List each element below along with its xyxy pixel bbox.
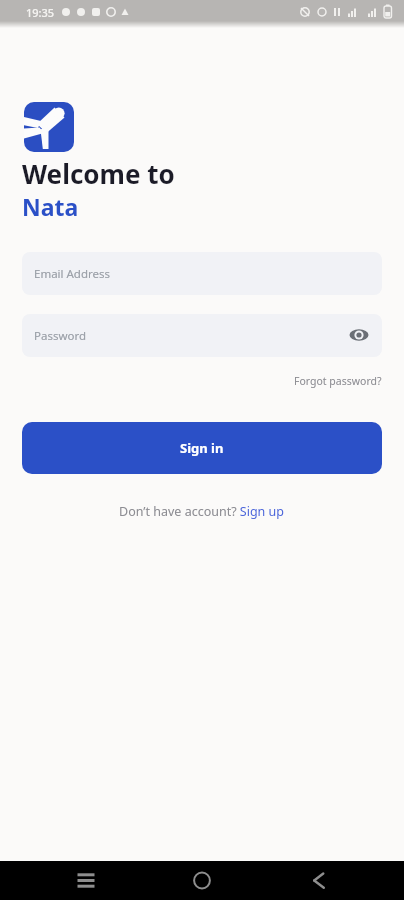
staticText: Sign in bbox=[180, 439, 224, 457]
button[interactable]: Sign in bbox=[22, 422, 382, 474]
staticText: Nata bbox=[22, 191, 79, 222]
button[interactable]: Password bbox=[22, 314, 382, 357]
staticText: Welcome to bbox=[22, 156, 175, 191]
staticText: 19:35 bbox=[26, 5, 55, 20]
staticText: Password bbox=[34, 328, 87, 344]
button[interactable]: Don’t have account? Sign up bbox=[119, 503, 285, 520]
button[interactable] bbox=[0, 861, 134, 900]
button[interactable]: Forgot password? bbox=[294, 374, 382, 388]
button[interactable] bbox=[134, 861, 269, 900]
button[interactable]: Email Address bbox=[22, 252, 382, 295]
button[interactable] bbox=[269, 861, 404, 900]
staticText: Email Address bbox=[34, 266, 111, 282]
